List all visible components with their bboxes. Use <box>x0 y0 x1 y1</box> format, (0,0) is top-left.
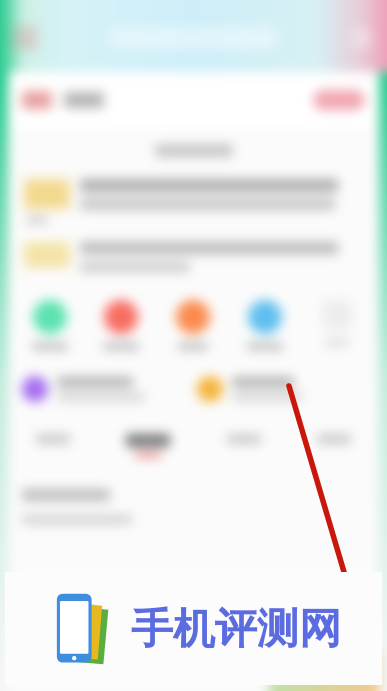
button[interactable] <box>30 428 76 456</box>
button[interactable] <box>221 428 267 456</box>
button[interactable] <box>85 294 157 356</box>
button[interactable] <box>311 428 357 456</box>
button[interactable] <box>157 294 229 356</box>
button[interactable] <box>14 294 85 356</box>
button[interactable] <box>24 179 363 210</box>
button[interactable] <box>12 26 38 50</box>
button[interactable] <box>301 294 373 352</box>
button[interactable] <box>109 27 279 49</box>
staticText: 手机评测网 <box>131 603 341 656</box>
button[interactable] <box>193 372 369 406</box>
button[interactable] <box>18 372 193 406</box>
button[interactable] <box>229 294 301 356</box>
button[interactable] <box>120 428 176 463</box>
button[interactable] <box>24 242 363 272</box>
button[interactable] <box>313 90 365 110</box>
button[interactable] <box>351 27 373 49</box>
